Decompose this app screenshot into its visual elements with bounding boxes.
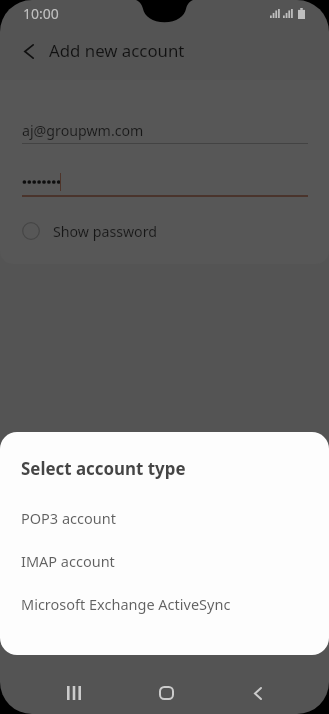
button[interactable]: Back	[212, 671, 304, 714]
staticText: POP3 account	[21, 508, 116, 528]
button[interactable]: Back	[11, 33, 47, 69]
staticText: aj@groupwm.com	[22, 121, 144, 140]
button[interactable]: Home	[120, 671, 212, 714]
staticText: 10:00	[23, 4, 59, 23]
button[interactable]: IMAP account	[0, 539, 329, 582]
staticText: Microsoft Exchange ActiveSync	[21, 594, 231, 614]
button[interactable]: Microsoft Exchange ActiveSync	[0, 582, 329, 625]
staticText: Add new account	[49, 39, 185, 62]
button[interactable]: Show password	[0, 220, 329, 242]
staticText: Show password	[53, 222, 158, 241]
button[interactable]: Recent apps	[27, 671, 120, 714]
staticText: IMAP account	[21, 551, 115, 571]
button[interactable]: POP3 account	[0, 496, 329, 539]
staticText: Select account type	[21, 457, 186, 480]
